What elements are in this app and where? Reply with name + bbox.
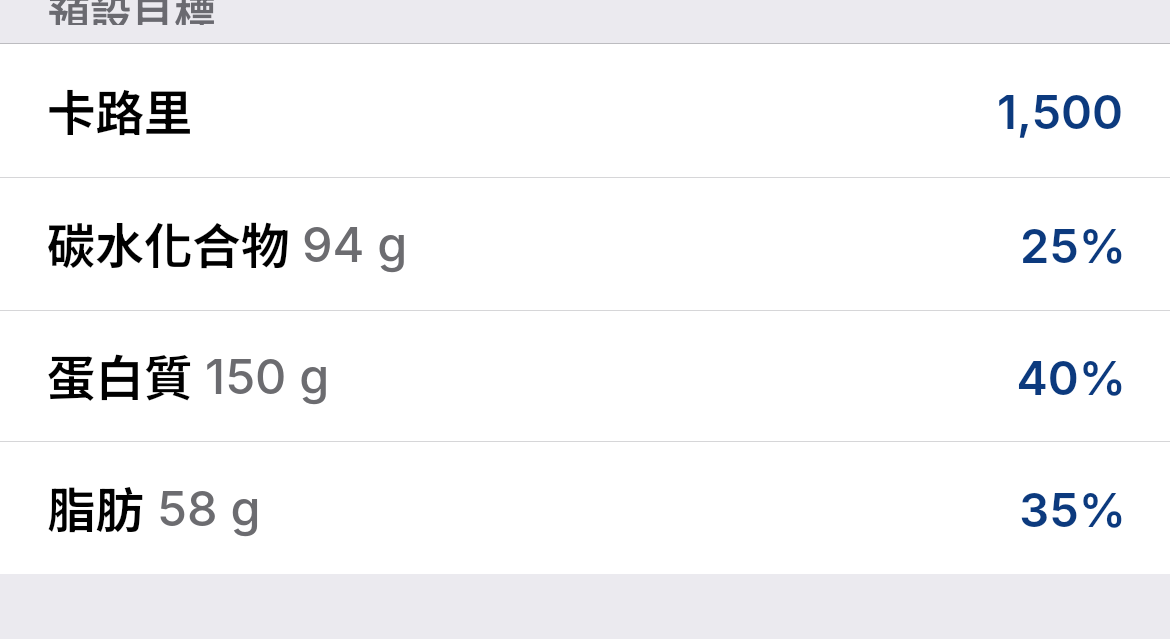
staticText: 94 g (302, 215, 408, 274)
staticText: 預設目標 (48, 0, 217, 25)
staticText: 35% (1019, 481, 1126, 538)
staticText: 蛋白質 (47, 340, 193, 410)
staticText: 碳水化合物 (47, 208, 290, 278)
button[interactable]: 卡路里 (0, 44, 1170, 177)
staticText: 25% (1019, 217, 1126, 274)
staticText: 150 g (205, 347, 330, 406)
staticText: 40% (1016, 349, 1126, 406)
button[interactable]: 蛋白質 (0, 311, 1170, 441)
staticText: 卡路里 (47, 75, 193, 145)
button[interactable]: 碳水化合物 (0, 178, 1170, 310)
staticText: 1,500 (997, 83, 1123, 140)
button[interactable]: 脂肪 (0, 442, 1170, 574)
staticText: 58 g (157, 479, 261, 538)
staticText: 脂肪 (47, 472, 145, 542)
